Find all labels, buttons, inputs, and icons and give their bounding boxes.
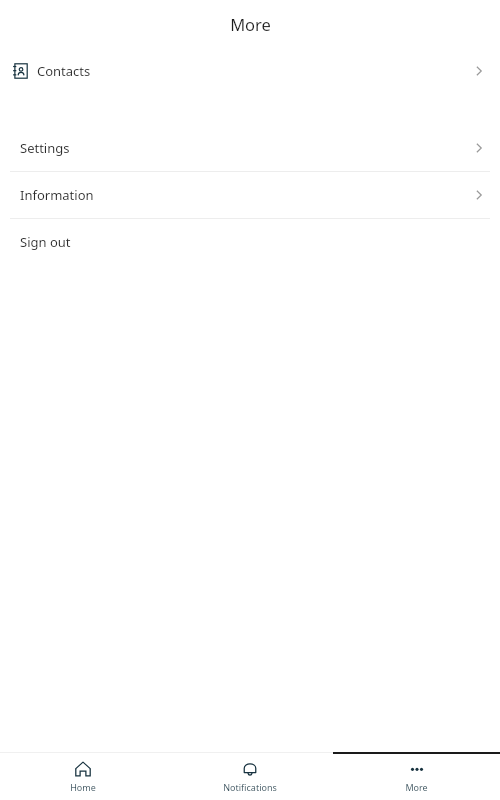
- staticText: More: [230, 13, 271, 35]
- staticText: Notifications: [223, 781, 277, 793]
- other: More: [408, 760, 426, 778]
- button[interactable]: Notifications: [166, 754, 333, 793]
- staticText: Information: [20, 186, 94, 204]
- staticText: Contacts: [37, 62, 91, 80]
- button[interactable]: Sign out: [0, 219, 500, 265]
- button[interactable]: Settings: [0, 125, 500, 171]
- staticText: Sign out: [20, 233, 71, 251]
- staticText: Home: [70, 781, 96, 793]
- staticText: Settings: [20, 139, 70, 157]
- button[interactable]: Contacts: [0, 48, 500, 94]
- button[interactable]: Information: [0, 172, 500, 218]
- other: Notifications: [241, 760, 259, 778]
- button[interactable]: Home: [0, 754, 166, 793]
- other: Home: [74, 760, 92, 778]
- staticText: More: [405, 781, 428, 793]
- button[interactable]: More: [333, 754, 500, 793]
